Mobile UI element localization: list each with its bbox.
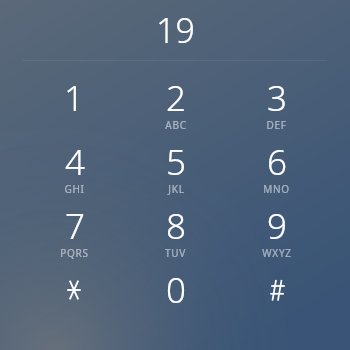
staticText: 19 <box>156 7 195 53</box>
staticText: 1 <box>64 74 84 122</box>
staticText: 9 <box>267 202 287 250</box>
button[interactable]: 6 <box>226 138 327 202</box>
button[interactable]: 5 <box>125 138 226 202</box>
staticText: 7 <box>65 202 85 250</box>
button[interactable]: 1 <box>23 74 125 138</box>
button[interactable]: Pound key <box>226 266 327 330</box>
staticText: 2 <box>166 74 186 122</box>
button[interactable]: 4 <box>23 138 125 202</box>
staticText: WXYZ <box>262 246 292 260</box>
staticText: 6 <box>267 138 287 186</box>
staticText: 5 <box>166 138 186 186</box>
staticText: GHI <box>64 182 85 196</box>
staticText: 3 <box>267 74 287 122</box>
staticText: 0 <box>166 266 186 314</box>
button[interactable]: Star key <box>23 266 125 330</box>
staticText: 8 <box>166 202 186 250</box>
button[interactable]: 3 <box>226 74 327 138</box>
staticText: JKL <box>168 182 185 196</box>
button[interactable]: 0 <box>125 266 226 330</box>
staticText: ABC <box>165 118 187 132</box>
button[interactable]: 8 <box>125 202 226 266</box>
staticText: TUV <box>165 246 186 260</box>
button[interactable]: 9 <box>226 202 327 266</box>
staticText: DEF <box>266 118 287 132</box>
button[interactable]: 7 <box>23 202 125 266</box>
staticText: 4 <box>65 138 85 186</box>
button[interactable]: 2 <box>125 74 226 138</box>
staticText: MNO <box>263 182 290 196</box>
staticText: PQRS <box>60 246 89 260</box>
